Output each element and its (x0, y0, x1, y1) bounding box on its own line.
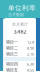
staticText: 4.55 (27, 67, 34, 72)
staticText: 单位利率 (8, 4, 36, 12)
staticText: 当月数据 (8, 12, 24, 17)
staticText: 2.10 (27, 51, 34, 57)
staticText: 12.4 (27, 39, 34, 45)
staticText: 6.30 (27, 61, 34, 67)
staticText: 项目五 (6, 67, 18, 72)
staticText: 项目四 (6, 61, 18, 66)
staticText: 本月累计 (12, 22, 28, 27)
staticText: 项目三 (6, 51, 18, 56)
staticText: 项目二 (6, 45, 18, 50)
staticText: 3,482 (13, 28, 26, 35)
staticText: 项目一 (6, 39, 18, 44)
staticText: 8.90 (27, 45, 34, 51)
